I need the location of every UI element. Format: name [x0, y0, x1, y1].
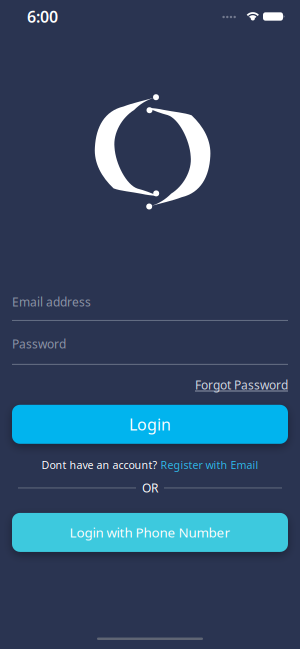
button[interactable]: Login	[12, 405, 288, 444]
button[interactable]: Forgot Password	[195, 377, 288, 393]
staticText: Email address	[12, 294, 91, 310]
button[interactable]: Register with Email	[160, 458, 258, 472]
staticText: Password	[12, 336, 66, 352]
button[interactable]: Email address	[12, 294, 288, 321]
staticText: Login with Phone Number	[69, 524, 230, 541]
staticText: Forgot Password	[195, 377, 288, 393]
staticText: OR	[142, 480, 158, 496]
button[interactable]: Login with Phone Number	[12, 513, 288, 552]
staticText: Register with Email	[160, 458, 258, 472]
staticText: Login	[129, 414, 171, 435]
button[interactable]: Password	[12, 336, 288, 365]
staticText: Dont have an account?	[41, 458, 157, 472]
staticText: 6:00	[27, 6, 58, 27]
